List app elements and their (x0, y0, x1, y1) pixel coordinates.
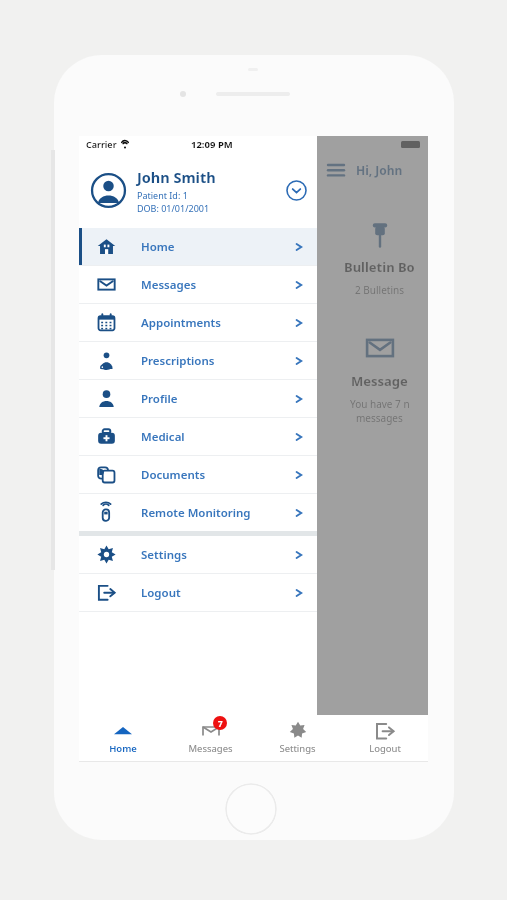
button[interactable]: John Smith (79, 152, 317, 228)
button[interactable]: Logout (341, 715, 428, 761)
staticText: DOB: 01/01/2001 (137, 202, 210, 214)
staticText: Messages (188, 742, 233, 755)
button[interactable]: Appointments (79, 304, 317, 341)
staticText: 12:09 PM (191, 138, 233, 151)
staticText: Settings (141, 547, 187, 563)
staticText: Medical (141, 429, 185, 445)
staticText: Carrier (86, 138, 117, 150)
button[interactable]: Home (79, 228, 317, 265)
button[interactable]: Expand profile (286, 180, 307, 201)
button[interactable]: Documents (79, 456, 317, 493)
staticText: Documents (141, 467, 206, 483)
button[interactable]: Bulletin Bo (331, 205, 428, 303)
staticText: Messages (141, 277, 197, 293)
staticText: Profile (141, 391, 178, 407)
staticText: Settings (279, 742, 316, 755)
button[interactable]: Home (79, 715, 167, 761)
staticText: 2 Bulletins (355, 283, 404, 297)
staticText: messages (356, 411, 403, 425)
staticText: 7 (218, 718, 223, 729)
button[interactable]: Profile (79, 380, 317, 417)
button[interactable]: Medical (79, 418, 317, 455)
staticText: Home (141, 239, 175, 255)
staticText: Message (351, 372, 408, 390)
button[interactable]: Message (331, 319, 428, 431)
staticText: Bulletin Bo (344, 258, 415, 276)
staticText: John Smith (137, 167, 216, 187)
staticText: Home (109, 742, 137, 755)
staticText: Patient Id: 1 (137, 189, 188, 201)
staticText: Remote Monitoring (141, 505, 251, 521)
button[interactable]: Remote Monitoring (79, 494, 317, 531)
staticText: Logout (141, 585, 181, 601)
staticText: Hi, John (356, 162, 403, 178)
staticText: Prescriptions (141, 353, 215, 369)
button[interactable]: 7 (167, 715, 254, 761)
button[interactable]: Settings (254, 715, 341, 761)
button[interactable]: Messages (79, 266, 317, 303)
staticText: Logout (369, 742, 401, 755)
button[interactable]: Prescriptions (79, 342, 317, 379)
button[interactable]: Logout (79, 574, 317, 611)
staticText: You have 7 n (350, 397, 410, 411)
button[interactable]: Settings (79, 536, 317, 573)
staticText: Appointments (141, 315, 221, 331)
